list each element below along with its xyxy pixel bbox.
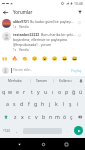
button[interactable]: o	[56, 85, 63, 97]
button[interactable]: Like comment	[76, 19, 83, 26]
button[interactable]: s	[11, 97, 18, 110]
staticText: 1s	[13, 25, 17, 29]
staticText: v	[35, 113, 38, 120]
staticText: x	[21, 113, 24, 120]
staticText: 😊	[52, 56, 58, 61]
button[interactable]: 😮	[40, 53, 50, 64]
staticText: e	[16, 88, 19, 95]
button[interactable]: u	[42, 85, 49, 97]
button[interactable]: ı	[49, 85, 56, 97]
staticText: r	[23, 88, 26, 95]
button[interactable]: 🙌	[0, 53, 10, 64]
button[interactable]: v	[33, 110, 40, 123]
button[interactable]: Merhaba	[0, 76, 30, 85]
staticText: alibe9721	[13, 19, 29, 24]
staticText: ç	[70, 113, 73, 120]
button[interactable]: 😊	[50, 53, 60, 64]
button[interactable]: c	[26, 110, 33, 123]
staticText: q	[2, 88, 6, 95]
button[interactable]: Back	[14, 139, 24, 149]
button[interactable]: t	[28, 85, 35, 97]
staticText: w	[8, 88, 13, 95]
button[interactable]: y	[35, 85, 42, 97]
button[interactable]: Kullanıcı	[54, 76, 76, 85]
button[interactable]: alibe9721	[0, 17, 85, 29]
button[interactable]: Voice input	[76, 76, 85, 85]
staticText: Bunu harika bir şekilde	[41, 32, 76, 37]
button[interactable]: a	[4, 97, 11, 110]
staticText: 🙂	[32, 56, 38, 61]
staticText: j	[49, 100, 51, 107]
staticText: Yanıtla	[19, 25, 29, 29]
button[interactable]: j	[46, 97, 53, 110]
button[interactable]: Recents	[61, 139, 71, 149]
button[interactable]: 🔥	[10, 53, 20, 64]
staticText: 😂	[72, 56, 78, 61]
button[interactable]: ?123	[0, 123, 12, 138]
staticText: .	[67, 128, 69, 134]
button[interactable]: g	[32, 97, 39, 110]
staticText: a	[6, 100, 9, 107]
button[interactable]: b	[40, 110, 47, 123]
button[interactable]: r	[21, 85, 28, 97]
button[interactable]: w	[7, 85, 14, 97]
staticText: i	[77, 100, 79, 107]
staticText: o	[58, 88, 62, 95]
button[interactable]: 👏	[20, 53, 30, 64]
staticText: 🔥	[12, 56, 18, 61]
button[interactable]: 😄	[60, 53, 70, 64]
button[interactable]: Shift	[0, 110, 11, 123]
button[interactable]: k	[53, 97, 60, 110]
button[interactable]: ğ	[70, 85, 77, 97]
button[interactable]: ü	[77, 85, 84, 97]
staticText: 😄	[62, 56, 68, 61]
button[interactable]: testanber22222	[0, 32, 85, 51]
button[interactable]: f	[25, 97, 32, 110]
button[interactable]: n	[47, 110, 54, 123]
button[interactable]: x	[19, 110, 26, 123]
button[interactable]: 🙂	[30, 53, 40, 64]
staticText: t	[31, 88, 33, 95]
button[interactable]: Send	[74, 126, 83, 135]
button[interactable]: Backspace	[75, 110, 85, 123]
button[interactable]: Home	[38, 139, 48, 149]
staticText: z	[14, 113, 17, 120]
staticText: ı	[52, 88, 54, 95]
button[interactable]: ç	[68, 110, 75, 123]
staticText: Yorumlar	[13, 9, 33, 15]
button[interactable]: z	[11, 110, 19, 123]
button[interactable]: m	[54, 110, 61, 123]
button[interactable]: p	[63, 85, 70, 97]
button[interactable]: h	[39, 97, 46, 110]
staticText: u	[44, 88, 48, 95]
staticText: Bu kadar güzel bir paylaşım için teşekkü…	[30, 19, 76, 24]
button[interactable]: i	[74, 97, 81, 110]
staticText: başardınız, ellerinize ve paylaşana	[13, 37, 67, 42]
button[interactable]: Back	[0, 7, 11, 17]
button[interactable]: ,	[12, 123, 22, 138]
staticText: g	[34, 100, 38, 107]
button[interactable]: q	[1, 85, 7, 97]
staticText: 1s	[13, 48, 17, 51]
staticText: ş	[69, 100, 72, 107]
staticText: s	[13, 100, 16, 107]
button[interactable]: Paylaş	[70, 66, 83, 75]
staticText: Paylaş	[71, 68, 82, 73]
staticText: c	[28, 113, 31, 120]
button[interactable]: 😂	[70, 53, 80, 64]
staticText: @hepsiburada1 - yorum	[13, 42, 52, 47]
button[interactable]: e	[14, 85, 21, 97]
button[interactable]: l	[60, 97, 67, 110]
button[interactable]: ş	[67, 97, 74, 110]
staticText: y	[37, 88, 40, 95]
staticText: Tamam	[36, 79, 48, 83]
button[interactable]: Tamam	[31, 76, 53, 85]
staticText: ?123	[3, 129, 10, 133]
staticText: k	[55, 100, 58, 107]
button[interactable]: ö	[61, 110, 68, 123]
button[interactable]: Like comment	[76, 32, 83, 39]
button[interactable]: Sort comments	[74, 7, 85, 17]
button[interactable]: d	[18, 97, 25, 110]
